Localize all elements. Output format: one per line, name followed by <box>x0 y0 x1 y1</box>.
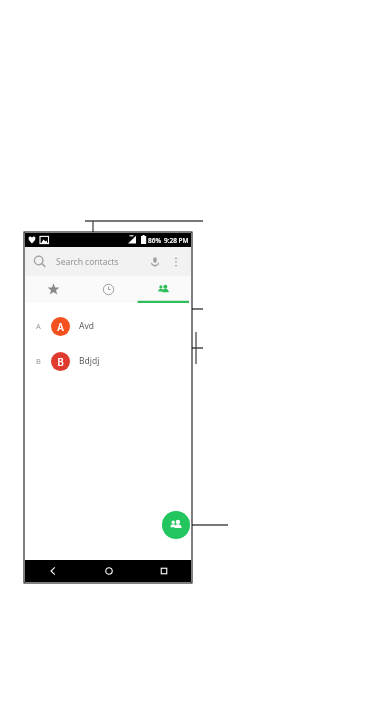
button[interactable]: A <box>25 313 191 339</box>
button[interactable]: Recent apps <box>136 560 191 582</box>
button[interactable]: Voice search <box>148 255 162 269</box>
button[interactable]: Back <box>25 560 81 582</box>
button[interactable]: More options <box>169 255 183 269</box>
staticText: Search contacts <box>56 256 119 268</box>
staticText: Avd <box>79 320 94 332</box>
staticText: Bdjdj <box>79 355 100 367</box>
button[interactable]: Recents <box>81 276 136 303</box>
staticText: B <box>57 355 64 369</box>
staticText: A <box>36 321 41 331</box>
button[interactable]: Home <box>81 560 136 582</box>
button[interactable]: Contacts <box>136 276 191 303</box>
button[interactable]: Add contact <box>162 511 190 539</box>
button[interactable]: B <box>25 348 191 374</box>
staticText: 86% <box>148 236 161 245</box>
button[interactable]: Favorites <box>25 276 81 303</box>
staticText: A <box>57 320 64 334</box>
staticText: B <box>36 356 41 366</box>
staticText: 9:28 PM <box>164 236 189 245</box>
button[interactable]: Search contacts <box>25 247 191 276</box>
